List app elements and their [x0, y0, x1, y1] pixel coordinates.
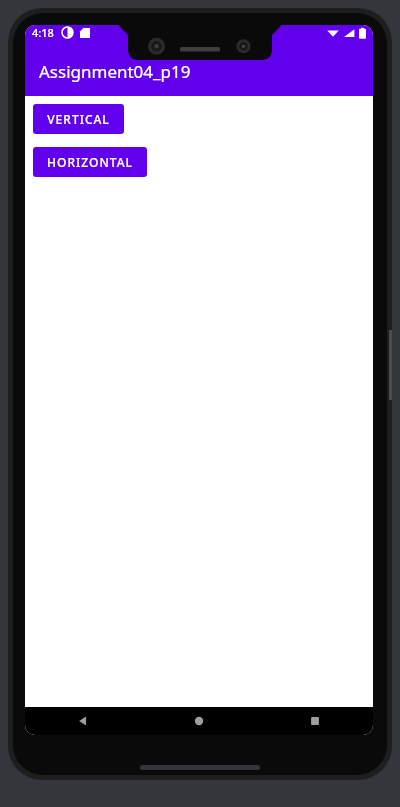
button[interactable]: VERTICAL	[33, 104, 124, 134]
button[interactable]: HORIZONTAL	[33, 147, 147, 177]
staticText: VERTICAL	[47, 111, 110, 127]
staticText: Assignment04_p19	[39, 60, 191, 83]
button[interactable]: Recent apps	[257, 707, 373, 735]
button[interactable]: Home	[141, 707, 257, 735]
staticText: HORIZONTAL	[47, 154, 133, 170]
staticText: 4:18	[32, 25, 54, 40]
button[interactable]: Back	[25, 707, 141, 735]
